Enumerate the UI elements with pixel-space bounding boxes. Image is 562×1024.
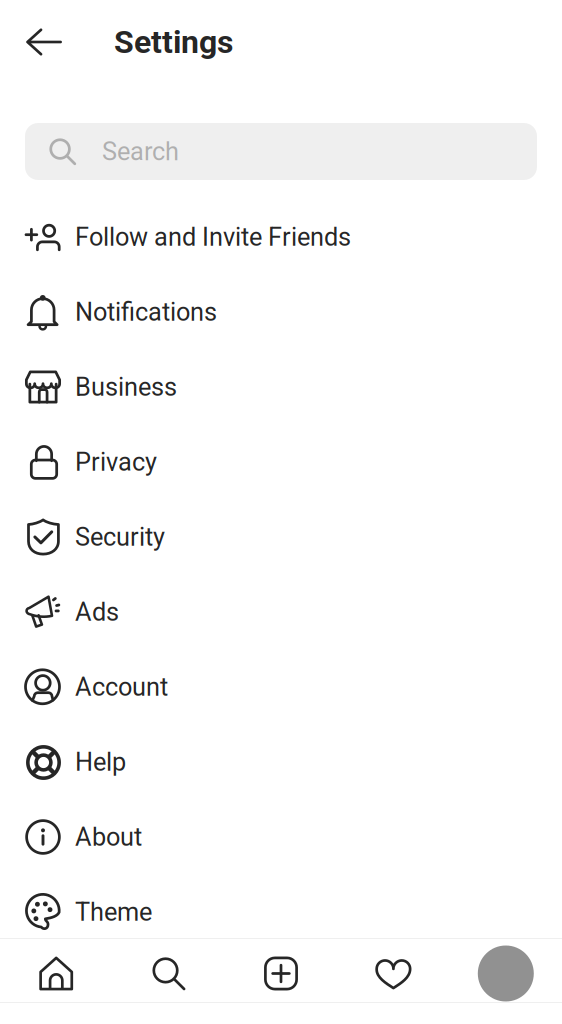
button[interactable]: Privacy: [0, 424, 562, 499]
staticText: Settings: [114, 23, 233, 61]
staticText: Follow and Invite Friends: [75, 222, 351, 252]
button[interactable]: Back: [16, 14, 72, 70]
button[interactable]: Help: [0, 724, 562, 799]
button[interactable]: New post: [225, 945, 337, 1002]
button[interactable]: Activity: [337, 945, 450, 1002]
staticText: Account: [75, 672, 168, 702]
button[interactable]: Security: [0, 499, 562, 574]
button[interactable]: Notifications: [0, 274, 562, 349]
staticText: Security: [75, 522, 165, 552]
button[interactable]: Search: [112, 945, 225, 1002]
staticText: Ads: [75, 597, 119, 627]
button[interactable]: Account: [0, 649, 562, 724]
button[interactable]: Theme: [0, 874, 562, 949]
staticText: About: [75, 822, 142, 852]
button[interactable]: About: [0, 799, 562, 874]
button[interactable]: Home: [0, 945, 112, 1002]
staticText: Help: [75, 747, 126, 777]
staticText: Search: [102, 137, 179, 166]
button[interactable]: Ads: [0, 574, 562, 649]
button[interactable]: Follow and Invite Friends: [0, 199, 562, 274]
button[interactable]: Business: [0, 349, 562, 424]
staticText: Privacy: [75, 447, 157, 477]
staticText: Notifications: [75, 297, 217, 327]
staticText: Theme: [75, 897, 152, 927]
staticText: Business: [75, 372, 177, 402]
button[interactable]: Profile: [450, 945, 562, 1002]
